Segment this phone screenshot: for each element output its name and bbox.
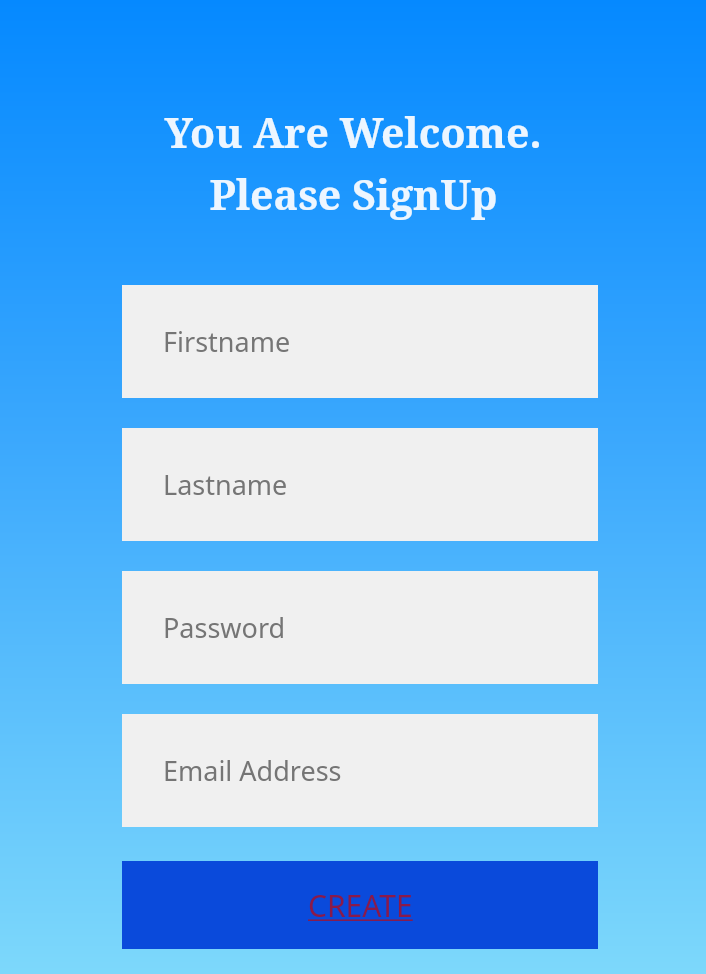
button[interactable]: Firstname [122,285,598,398]
button[interactable]: Email Address [122,714,598,827]
staticText: You Are Welcome. [164,104,542,160]
staticText: Please SignUp [209,166,498,222]
staticText: Email Address [163,752,342,789]
staticText: Firstname [163,323,291,360]
staticText: Password [163,609,286,646]
button[interactable]: Create account [122,861,598,949]
button[interactable]: Password [122,571,598,684]
staticText: Lastname [163,466,288,503]
button[interactable]: Lastname [122,428,598,541]
staticText: CREATE [308,885,413,926]
